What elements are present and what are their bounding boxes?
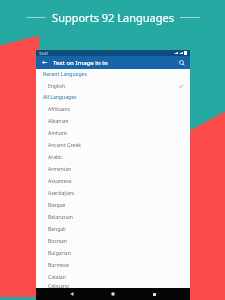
staticText: Bulgarian [48, 250, 71, 257]
button[interactable]: Belarusian [36, 211, 190, 223]
button[interactable]: Search [177, 58, 186, 67]
staticText: Ancient Greek [48, 142, 81, 149]
button[interactable]: Cebuano [36, 283, 190, 288]
button[interactable]: Ancient Greek [36, 139, 190, 151]
staticText: 12:41 [39, 51, 48, 56]
button[interactable]: Bengali [36, 223, 190, 235]
staticText: Azerbaijani [48, 190, 75, 197]
button[interactable]: Basque [36, 199, 190, 211]
staticText: English [48, 83, 179, 90]
staticText: Basque [48, 202, 66, 209]
button[interactable]: Azerbaijani [36, 187, 190, 199]
button[interactable]: English [36, 80, 190, 92]
staticText: All Languages [43, 94, 77, 101]
button[interactable]: Recents [149, 289, 159, 299]
button[interactable]: Back [67, 289, 77, 299]
button[interactable]: Afrikaans [36, 103, 190, 115]
staticText: Supports 92 Languages [52, 10, 174, 25]
button[interactable]: Arabic [36, 151, 190, 163]
button[interactable]: Bulgarian [36, 247, 190, 259]
button[interactable]: Assamese [36, 175, 190, 187]
staticText: Catalan [48, 274, 66, 281]
button[interactable]: Catalan [36, 271, 190, 283]
button[interactable]: Albanian [36, 115, 190, 127]
staticText: Burmese [48, 262, 70, 269]
staticText: Assamese [48, 178, 72, 185]
staticText: Bosnian [48, 238, 67, 245]
button[interactable]: Home [108, 289, 118, 299]
staticText: Cebuano [48, 283, 70, 288]
staticText: Amharic [48, 130, 68, 137]
staticText: Recent Languages [43, 71, 87, 78]
button[interactable]: Amharic [36, 127, 190, 139]
staticText: Belarusian [48, 214, 73, 221]
staticText: Albanian [48, 118, 69, 125]
button[interactable]: Bosnian [36, 235, 190, 247]
button[interactable]: Back [40, 58, 49, 67]
staticText: Arabic [48, 154, 63, 161]
staticText: Bengali [48, 226, 66, 233]
button[interactable]: Armenian [36, 163, 190, 175]
staticText: Armenian [48, 166, 72, 173]
button[interactable]: Burmese [36, 259, 190, 271]
staticText: Afrikaans [48, 106, 71, 113]
staticText: Text on Image in in [53, 59, 177, 67]
